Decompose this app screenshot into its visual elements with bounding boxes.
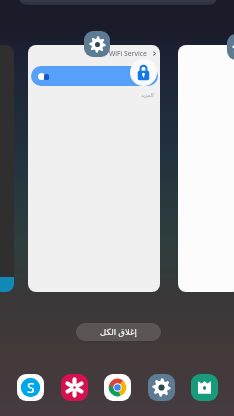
- staticText: WiFi Service: [109, 49, 147, 58]
- button[interactable]: Photos: [61, 374, 88, 401]
- staticText: S: [27, 378, 35, 397]
- button[interactable]: Chrome: [104, 374, 131, 401]
- button[interactable]: WiFi Service: [84, 31, 110, 57]
- staticText: إغلاق الكل: [100, 326, 137, 338]
- button[interactable]: Settings: [148, 374, 175, 401]
- button[interactable]: [178, 45, 234, 292]
- button[interactable]: Calendar: [191, 374, 218, 401]
- staticText: المزيد: [141, 92, 154, 98]
- button[interactable]: WiFi Service: [28, 45, 160, 292]
- button[interactable]: App: [227, 34, 234, 60]
- button[interactable]: [0, 45, 14, 292]
- button[interactable]: Skype: [17, 374, 44, 401]
- button[interactable]: إغلاق الكل: [76, 323, 161, 341]
